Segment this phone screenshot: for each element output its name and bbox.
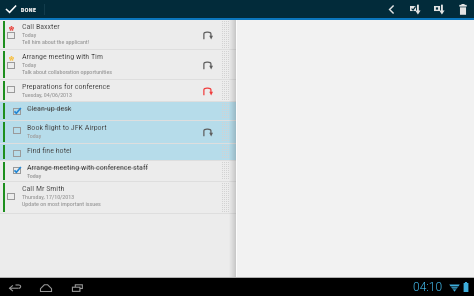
button[interactable]: Delete (451, 0, 474, 18)
staticText: Call Mr Smith (22, 184, 65, 193)
button[interactable]: Clean-up desk (0, 102, 237, 120)
button[interactable]: Arrange meeting with Tim (0, 50, 237, 79)
staticText: Arrange meeting with conference staff (27, 163, 149, 172)
button[interactable]: Sort by date (403, 0, 427, 18)
button[interactable]: Arrange meeting with conference staff (0, 161, 237, 181)
staticText: Clean-up desk (27, 104, 72, 113)
staticText: Today (22, 61, 37, 68)
button[interactable]: DONE (0, 0, 44, 18)
button[interactable]: Sort by priority (427, 0, 451, 18)
button[interactable]: Book flight to JFK Airport (0, 121, 237, 143)
button[interactable]: Home (36, 279, 56, 296)
staticText: Call Baxxter (22, 22, 60, 31)
button[interactable]: Call Baxxter (0, 20, 237, 49)
button[interactable]: Recent apps (67, 279, 87, 296)
staticText: Arrange meeting with Tim (22, 52, 103, 61)
button[interactable]: Find fine hotel (0, 144, 237, 160)
staticText: Tell him about the applicant! (22, 38, 90, 45)
staticText: Today (27, 172, 42, 179)
staticText: Find fine hotel (27, 146, 72, 155)
staticText: Talk about collaboration opportunities (22, 68, 113, 75)
staticText: Today (22, 31, 37, 38)
staticText: Update on most important issues (22, 200, 101, 207)
button[interactable]: Call Mr Smith (0, 182, 237, 213)
staticText: DONE (21, 6, 37, 13)
button[interactable]: Preparations for conference (0, 80, 237, 101)
staticText: Book flight to JFK Airport (27, 123, 107, 132)
staticText: Today (27, 132, 42, 139)
staticText: Preparations for conference (22, 82, 111, 91)
staticText: Thursday, 17/10/2013 (22, 193, 75, 200)
button[interactable]: Back (379, 0, 403, 18)
staticText: Tuesday, 04/06/2013 (22, 91, 72, 98)
button[interactable]: Back (5, 279, 25, 296)
staticText: 04:10 (413, 280, 443, 294)
